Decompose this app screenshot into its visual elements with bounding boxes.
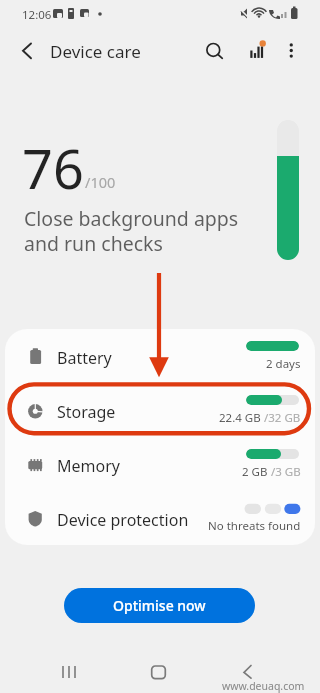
button[interactable]: Battery <box>5 329 315 383</box>
staticText: 22.4 GB <box>219 410 261 426</box>
staticText: /3 GB <box>268 464 301 480</box>
button[interactable]: Back <box>8 30 48 70</box>
staticText: /32 GB <box>261 410 301 426</box>
button[interactable]: More options <box>275 30 309 64</box>
button[interactable]: Storage <box>5 383 315 437</box>
button[interactable]: Optimise now <box>64 588 255 623</box>
button[interactable]: Search <box>193 30 233 70</box>
staticText: 2 GB <box>242 464 268 480</box>
staticText: 2 days <box>266 356 301 372</box>
staticText: www.deuaq.com <box>222 679 305 693</box>
staticText: Memory <box>57 455 120 477</box>
staticText: 76 <box>22 131 84 205</box>
button[interactable]: Device protection <box>5 491 315 545</box>
staticText: Optimise now <box>113 596 206 615</box>
staticText: Device care <box>50 40 141 63</box>
button[interactable]: Memory <box>5 437 315 491</box>
staticText: No threats found <box>208 518 301 534</box>
button[interactable]: Home <box>135 654 183 690</box>
staticText: 12:06 <box>22 7 52 23</box>
button[interactable]: Recents <box>45 654 93 690</box>
staticText: Storage <box>57 401 116 423</box>
staticText: /100 <box>85 172 116 192</box>
staticText: Close background apps and run checks <box>24 205 239 257</box>
button[interactable]: Usage statistics <box>241 30 275 64</box>
button[interactable]: Back <box>224 654 272 690</box>
staticText: Device protection <box>57 509 189 531</box>
staticText: Battery <box>57 347 112 369</box>
